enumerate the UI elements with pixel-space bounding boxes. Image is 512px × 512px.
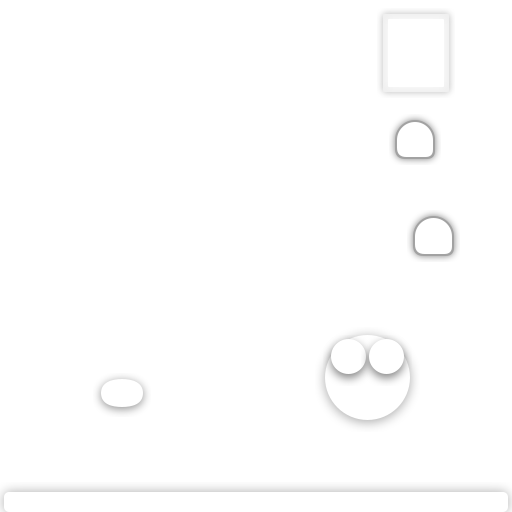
button[interactable]: Photo attachment	[383, 14, 449, 92]
button[interactable]: Received message	[101, 379, 143, 407]
button[interactable]: Reaction	[325, 335, 410, 420]
button[interactable]: Sent message	[413, 216, 454, 256]
button[interactable]: Sent message	[395, 120, 435, 159]
